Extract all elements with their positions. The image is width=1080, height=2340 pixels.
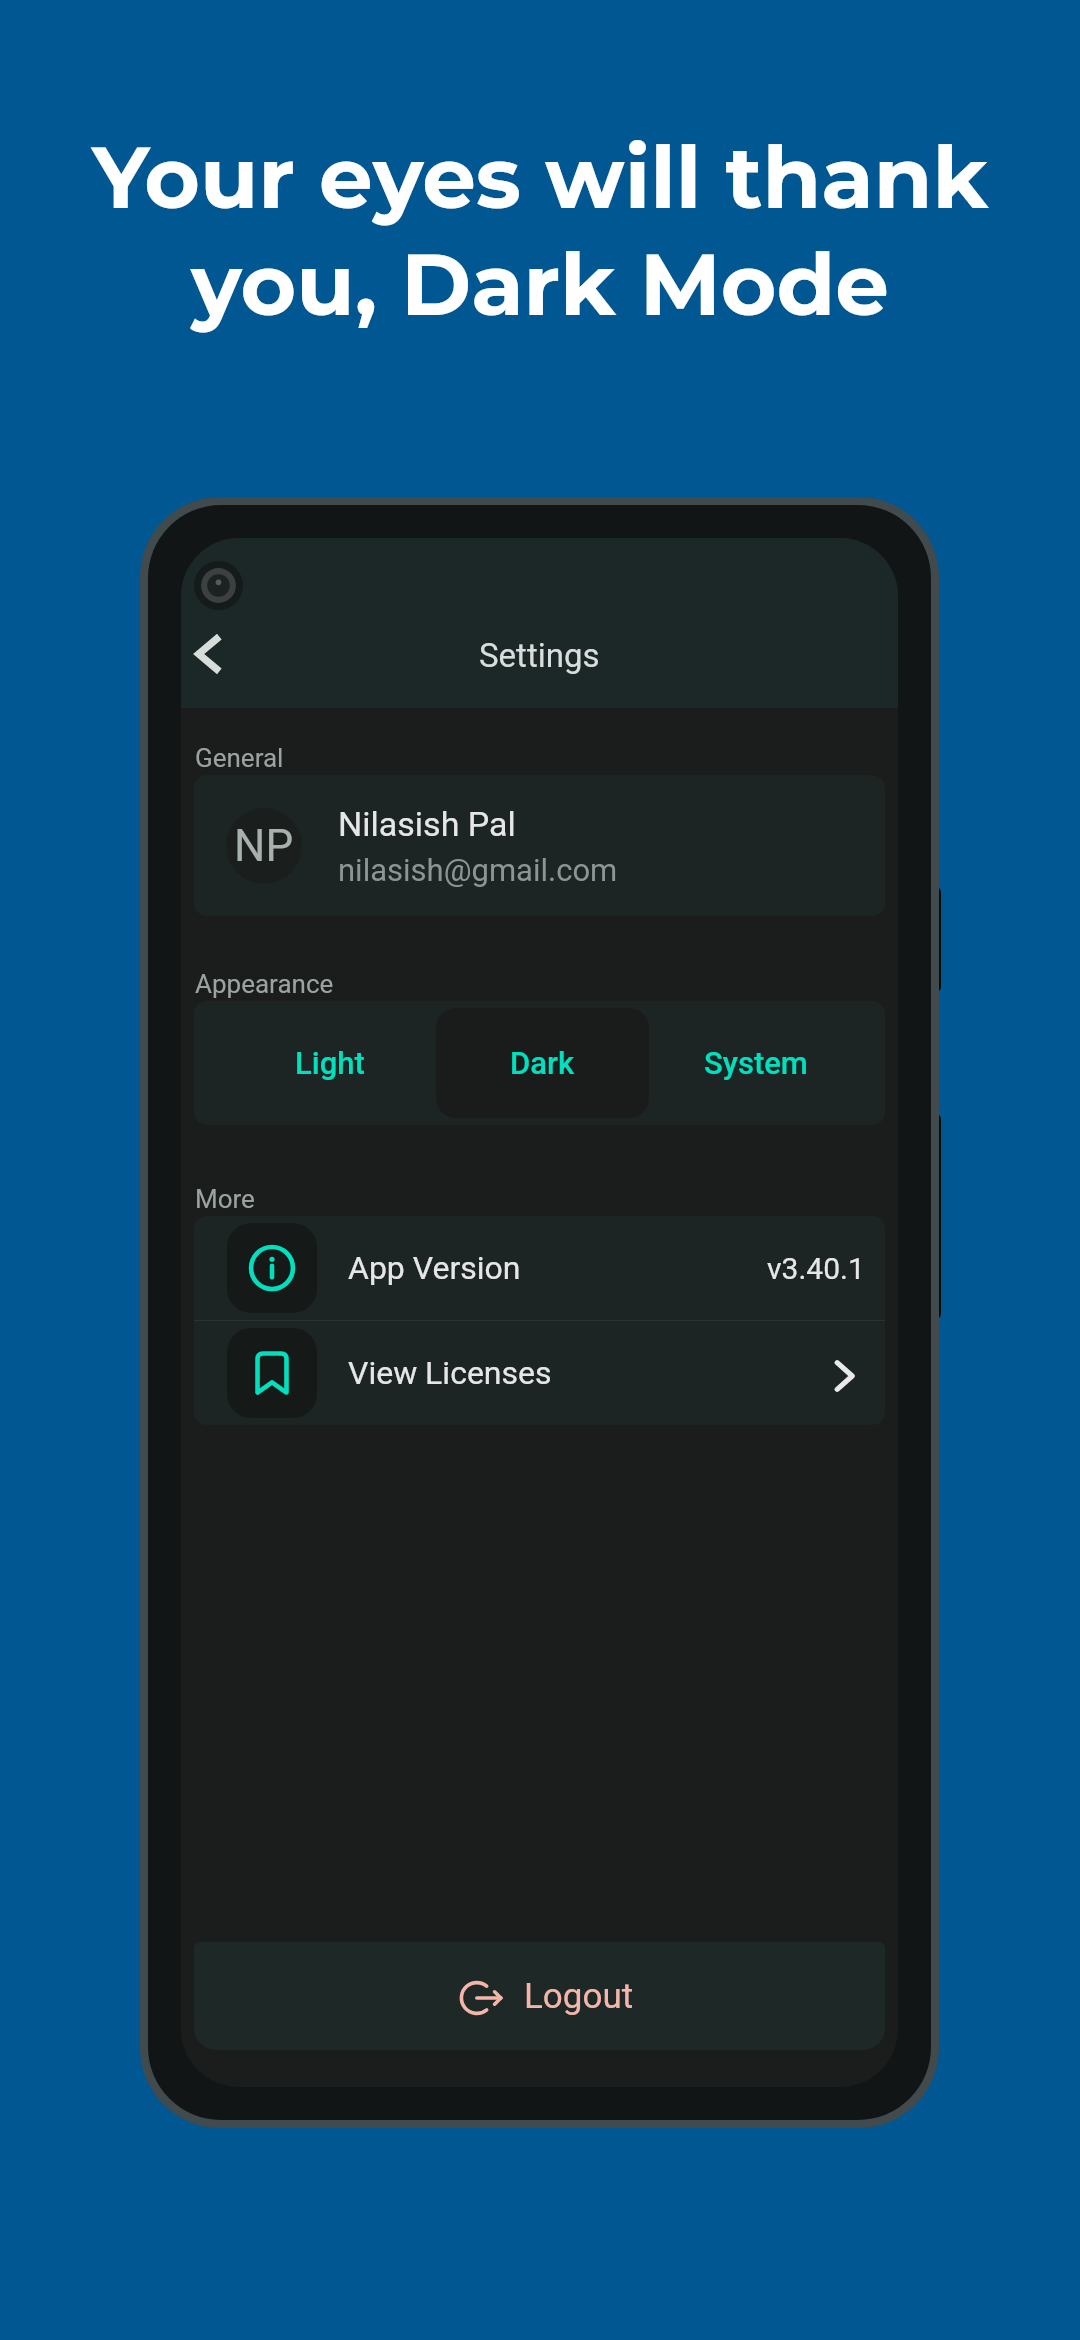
button[interactable]: System <box>649 1008 862 1118</box>
button[interactable]: Light <box>224 1008 436 1118</box>
staticText: System <box>704 1045 808 1081</box>
staticText: View Licenses <box>348 1354 552 1392</box>
staticText: Dark <box>510 1045 575 1081</box>
staticText: NP <box>234 820 294 872</box>
staticText: Your eyes will thank you, Dark Mode <box>0 126 1080 336</box>
staticText: General <box>195 743 284 773</box>
button[interactable]: Back <box>181 616 247 692</box>
staticText: Nilasish Pal <box>338 804 516 844</box>
staticText: App Version <box>348 1249 521 1287</box>
button[interactable]: View Licenses <box>194 1321 885 1425</box>
button[interactable]: Dark <box>436 1008 649 1118</box>
staticText: Settings <box>479 636 600 675</box>
button[interactable]: NP <box>194 775 885 916</box>
button[interactable]: Logout <box>194 1942 885 2050</box>
staticText: Logout <box>524 1976 634 2017</box>
staticText: v3.40.1 <box>767 1251 865 1286</box>
button[interactable]: App Version <box>194 1216 885 1320</box>
staticText: Appearance <box>195 969 334 999</box>
staticText: More <box>195 1184 255 1214</box>
staticText: Light <box>295 1045 365 1081</box>
staticText: nilasish@gmail.com <box>338 852 618 888</box>
